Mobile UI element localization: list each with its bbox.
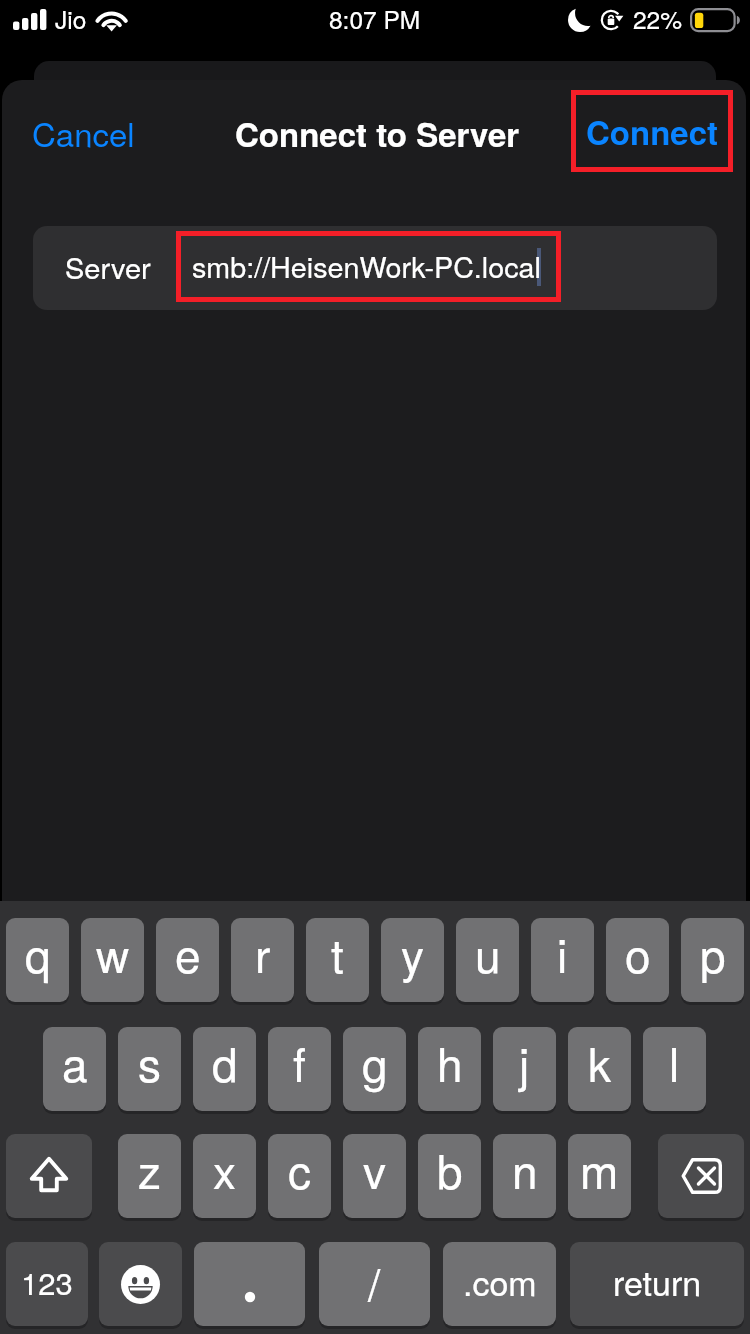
staticText: w [96,920,130,986]
button[interactable]: n [493,1134,556,1218]
staticText: Connect [586,108,718,155]
button[interactable]: Connect [576,95,728,167]
staticText: s [138,1029,161,1095]
staticText: 123 [21,1259,73,1303]
button[interactable]: Shift [6,1134,92,1218]
button[interactable]: g [343,1027,406,1111]
staticText: m [580,1136,619,1202]
staticText: 22% [633,1,683,36]
staticText: smb://HeisenWork-PC.local [192,245,541,286]
button[interactable]: / [319,1242,430,1326]
button[interactable]: u [456,918,519,1002]
staticText: i [557,920,568,986]
staticText: y [401,920,424,986]
staticText: f [293,1029,306,1095]
staticText: Cancel [32,109,135,156]
staticText: o [625,920,651,986]
button[interactable]: x [193,1134,256,1218]
staticText: Server [65,246,151,288]
staticText: Jio [55,1,87,36]
button[interactable]: return [570,1242,744,1326]
button[interactable]: s [118,1027,181,1111]
staticText: u [475,920,501,986]
staticText: e [175,920,201,986]
button[interactable]: v [343,1134,406,1218]
staticText: Connect to Server [235,110,520,157]
staticText: g [362,1029,388,1095]
staticText: j [519,1029,530,1095]
button[interactable]: Backspace [658,1134,744,1218]
staticText: x [213,1136,236,1202]
staticText: h [437,1029,463,1095]
button[interactable]: m [568,1134,631,1218]
button[interactable]: 123 [6,1242,88,1326]
staticText: c [288,1136,311,1202]
button[interactable]: q [6,918,69,1002]
staticText: v [363,1136,386,1202]
staticText: l [669,1029,680,1095]
button[interactable]: w [81,918,144,1002]
button[interactable]: f [268,1027,331,1111]
button[interactable]: Period [194,1242,305,1326]
button[interactable]: o [606,918,669,1002]
button[interactable]: h [418,1027,481,1111]
button[interactable]: Cancel [12,94,155,170]
staticText: / [368,1250,381,1313]
button[interactable]: a [43,1027,106,1111]
button[interactable]: d [193,1027,256,1111]
staticText: k [588,1029,611,1095]
staticText: t [331,920,344,986]
button[interactable]: z [118,1134,181,1218]
staticText: .com [463,1257,537,1306]
button[interactable]: .com [443,1242,556,1326]
staticText: p [700,920,726,986]
staticText: return [613,1257,702,1306]
button[interactable]: smb://HeisenWork-PC.local [181,236,556,297]
button[interactable]: j [493,1027,556,1111]
button[interactable]: l [643,1027,706,1111]
staticText: z [138,1136,161,1202]
button[interactable]: y [381,918,444,1002]
staticText: q [25,920,51,986]
button[interactable]: t [306,918,369,1002]
staticText: a [62,1029,88,1095]
button[interactable]: p [681,918,744,1002]
button[interactable]: c [268,1134,331,1218]
button[interactable]: r [231,918,294,1002]
button[interactable]: i [531,918,594,1002]
button[interactable]: e [156,918,219,1002]
button[interactable]: Emoji keyboard [99,1242,182,1326]
staticText: r [255,920,271,986]
staticText: 8:07 PM [329,1,421,36]
staticText: b [437,1136,463,1202]
button[interactable]: k [568,1027,631,1111]
staticText: n [512,1136,538,1202]
staticText: d [212,1029,238,1095]
button[interactable]: b [418,1134,481,1218]
